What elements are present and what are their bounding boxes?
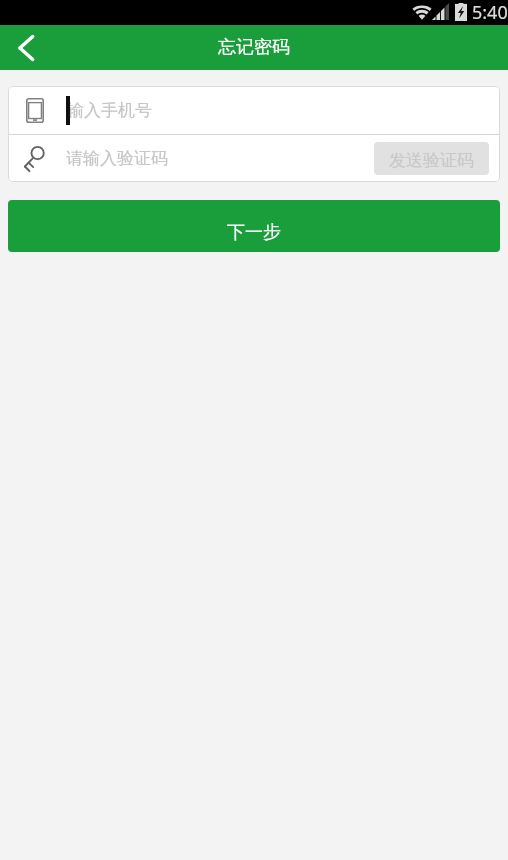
staticText: 请输入验证码 xyxy=(66,148,168,169)
staticText: 发送验证码 xyxy=(389,150,474,171)
staticText: 输入手机号 xyxy=(67,100,152,121)
button[interactable]: 下一步 xyxy=(8,200,500,252)
button[interactable]: 发送验证码 xyxy=(374,142,489,175)
staticText: 5:40 xyxy=(472,0,508,23)
staticText: 下一步 xyxy=(227,221,281,244)
staticText: 忘记密码 xyxy=(218,36,290,59)
button[interactable]: Back xyxy=(0,25,52,70)
button[interactable]: 请输入验证码 xyxy=(8,135,374,182)
button[interactable]: 输入手机号 xyxy=(8,86,500,134)
